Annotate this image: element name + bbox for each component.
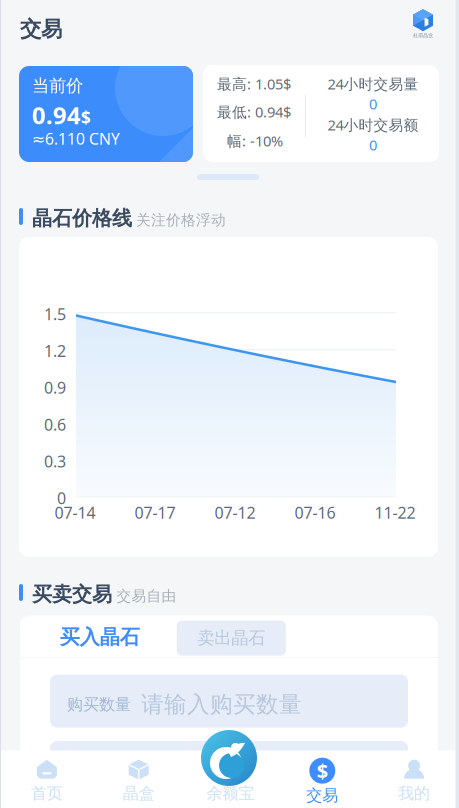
staticText: ≈6.110 CNY xyxy=(32,128,120,149)
staticText: 07-14 xyxy=(54,502,95,523)
button[interactable]: 买入晶石 xyxy=(41,617,159,658)
button[interactable]: 余额宝 xyxy=(201,730,257,786)
staticText: 07-12 xyxy=(214,502,255,523)
staticText: 买入晶石 xyxy=(60,625,140,649)
staticText: 1.2 xyxy=(44,340,66,361)
staticText: 买卖交易 xyxy=(32,582,112,607)
staticText: 购买数量 xyxy=(67,695,131,714)
staticText: 最高: 1.05$ xyxy=(217,74,291,93)
button[interactable]: 晶盒 xyxy=(93,750,185,808)
staticText: 0 xyxy=(369,135,377,154)
button[interactable]: 我的 xyxy=(368,750,459,808)
button[interactable]: 卖出晶石 xyxy=(177,621,286,656)
staticText: 晶盒 xyxy=(123,784,155,803)
button[interactable]: 晶盒 xyxy=(403,8,443,40)
staticText: 0 xyxy=(369,94,377,113)
staticText: 余额宝 xyxy=(206,784,254,803)
button[interactable]: 余额宝 xyxy=(185,750,276,808)
staticText: 请输入购买数量 xyxy=(141,691,302,718)
staticText: 0 xyxy=(57,487,66,509)
staticText: 24小时交易量 xyxy=(327,74,418,93)
staticText: 交易 xyxy=(306,786,338,805)
staticText: 11-22 xyxy=(374,502,415,523)
staticText: 0.6 xyxy=(44,414,66,435)
staticText: 07-17 xyxy=(134,502,175,523)
staticText: 0.94 xyxy=(32,99,81,131)
staticText: 交易自由 xyxy=(117,587,177,605)
staticText: 07-16 xyxy=(294,502,335,523)
staticText: 幅: -10% xyxy=(227,131,283,150)
staticText: 晶石价格线 xyxy=(32,206,132,231)
staticText: $ xyxy=(317,757,328,784)
staticText: 0.3 xyxy=(44,451,66,472)
staticText: 交易 xyxy=(20,16,62,42)
staticText: 首页 xyxy=(31,784,63,803)
staticText: 24小时交易额 xyxy=(327,115,418,134)
button[interactable]: 首页 xyxy=(1,750,93,808)
staticText: 我的 xyxy=(398,784,430,803)
staticText: 0.9 xyxy=(44,377,66,398)
staticText: 关注价格浮动 xyxy=(136,211,226,229)
staticText: 当前价 xyxy=(32,75,83,96)
staticText: $ xyxy=(81,106,91,129)
staticText: 1.5 xyxy=(44,303,66,325)
staticText: 杜甫晶盒 xyxy=(413,32,433,39)
staticText: 最低: 0.94$ xyxy=(217,102,291,121)
staticText: 卖出晶石 xyxy=(197,627,265,649)
button[interactable]: $ xyxy=(276,750,368,808)
